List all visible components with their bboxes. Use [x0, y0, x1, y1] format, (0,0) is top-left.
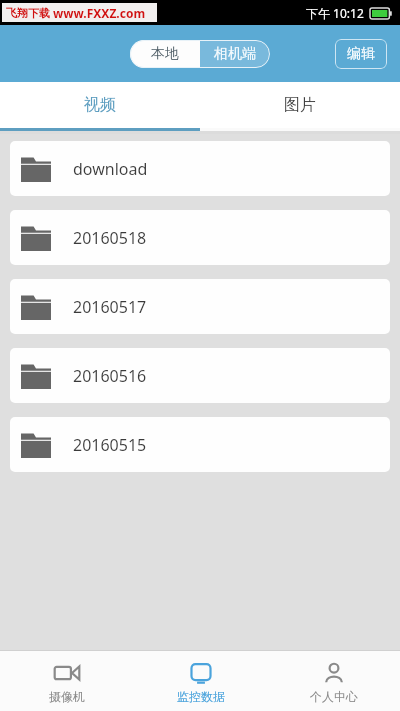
staticText: www.FXXZ.com	[53, 5, 146, 21]
staticText: 20160515	[73, 434, 147, 456]
staticText: 飞翔下载	[6, 6, 50, 20]
staticText: 编辑	[347, 45, 375, 63]
staticText: 下午 10:12	[306, 5, 364, 21]
button[interactable]: 20160517	[10, 279, 390, 334]
button[interactable]: 20160515	[10, 417, 390, 472]
staticText: 监控数据	[177, 689, 225, 704]
staticText: download	[73, 158, 148, 180]
button[interactable]: 个人中心	[267, 651, 400, 711]
staticText: 相机端	[214, 45, 256, 63]
staticText: 摄像机	[49, 689, 85, 704]
button[interactable]: 监控数据	[134, 651, 267, 711]
button[interactable]: 摄像机	[0, 651, 134, 711]
staticText: 视频	[84, 95, 116, 115]
staticText: 20160517	[73, 296, 147, 318]
button[interactable]: 20160518	[10, 210, 390, 265]
button[interactable]: download	[10, 141, 390, 196]
button[interactable]: 20160516	[10, 348, 390, 403]
staticText: 20160518	[73, 227, 147, 249]
staticText: 图片	[284, 95, 316, 115]
button[interactable]: 图片	[200, 82, 400, 128]
button[interactable]: 相机端	[200, 40, 270, 68]
staticText: 20160516	[73, 365, 147, 387]
button[interactable]: 编辑	[335, 39, 387, 69]
button[interactable]: 本地	[130, 40, 200, 68]
button[interactable]: 视频	[0, 82, 200, 128]
staticText: 个人中心	[310, 689, 358, 704]
staticText: 本地	[151, 45, 179, 63]
